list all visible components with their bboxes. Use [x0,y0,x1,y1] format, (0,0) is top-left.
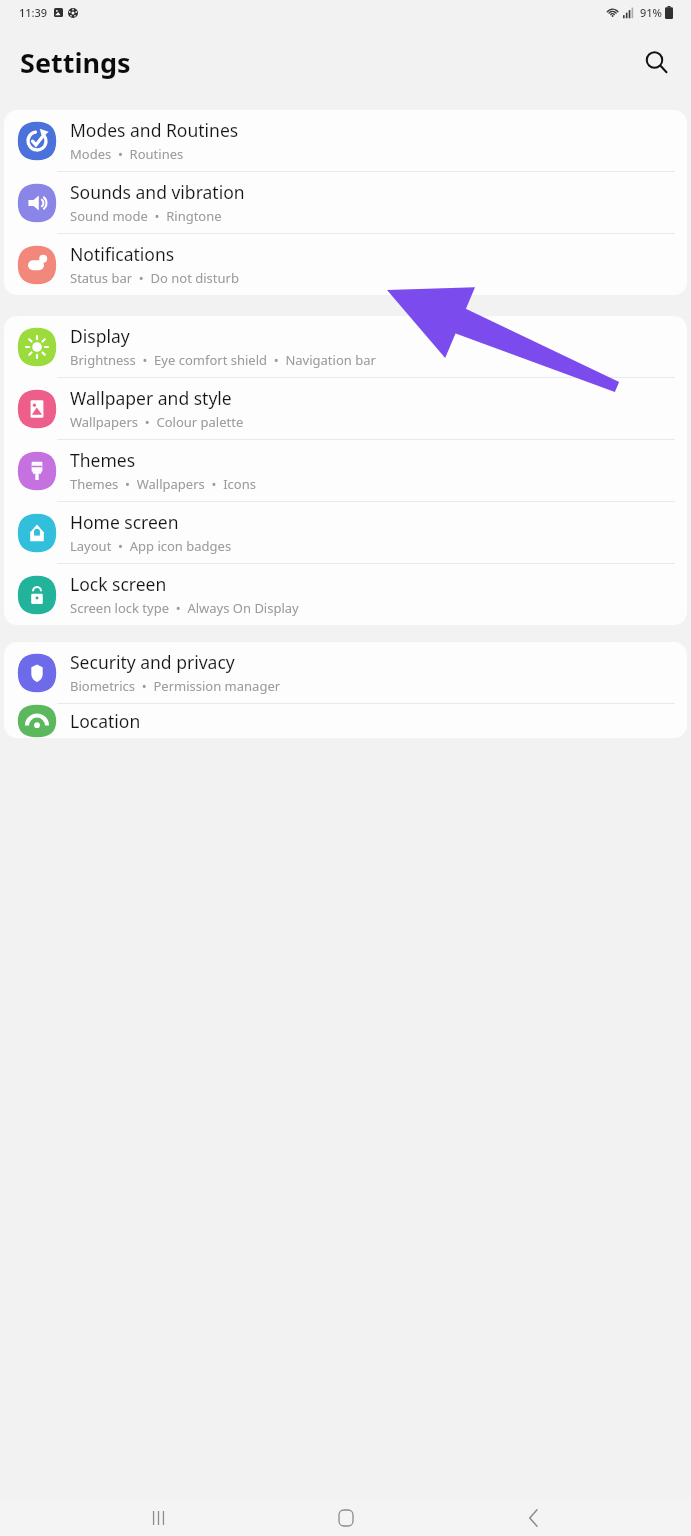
button[interactable]: Themes [4,440,687,501]
button[interactable]: Notifications [4,234,687,295]
button[interactable]: Modes and Routines [4,110,687,171]
button[interactable]: Lock screen [4,564,687,625]
button[interactable]: Security and privacy [4,642,687,703]
button[interactable]: Search [635,41,677,83]
button[interactable]: Recent apps [128,1500,188,1536]
staticText: 11:39 [19,5,48,20]
button[interactable]: Location [4,704,687,738]
button[interactable]: Home screen [4,502,687,563]
staticText: Display [70,324,130,348]
staticText: Sounds and vibration [70,180,245,204]
staticText: Location [70,709,141,733]
staticText: Sound mode • Ringtone [70,207,222,225]
button[interactable]: Home [316,1500,376,1536]
staticText: Themes • Wallpapers • Icons [70,475,256,493]
staticText: Wallpaper and style [70,386,232,410]
button[interactable]: Back [503,1500,563,1536]
button[interactable]: Wallpaper and style [4,378,687,439]
staticText: Wallpapers • Colour palette [70,413,244,431]
staticText: 91% [640,5,662,20]
staticText: Lock screen [70,572,167,596]
staticText: Brightness • Eye comfort shield • Naviga… [70,351,376,369]
staticText: Screen lock type • Always On Display [70,599,299,617]
staticText: Home screen [70,510,179,534]
staticText: Biometrics • Permission manager [70,677,281,695]
staticText: Modes • Routines [70,145,184,163]
staticText: Notifications [70,242,175,266]
button[interactable]: Sounds and vibration [4,172,687,233]
staticText: Security and privacy [70,650,235,674]
staticText: Modes and Routines [70,118,239,142]
staticText: Themes [70,448,136,472]
button[interactable]: Display [4,316,687,377]
staticText: Status bar • Do not disturb [70,269,239,287]
staticText: Layout • App icon badges [70,537,232,555]
staticText: Settings [20,44,131,81]
